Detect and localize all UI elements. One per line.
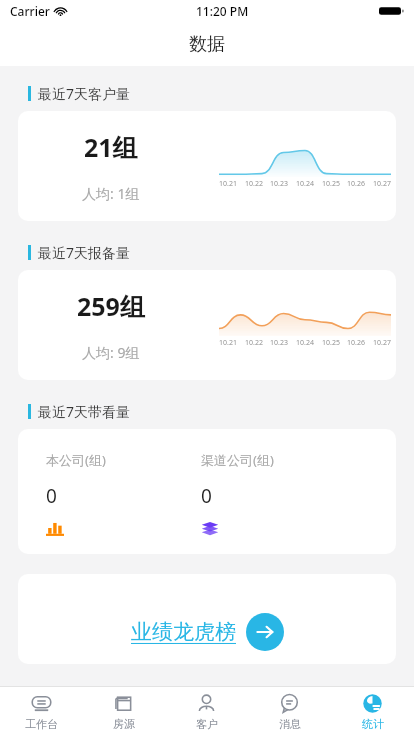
staticText: 房源 — [113, 717, 135, 731]
staticText: 10.26 — [347, 179, 365, 189]
staticText: 10.21 — [219, 179, 237, 189]
staticText: 渠道公司(组) — [201, 451, 274, 469]
staticText: 10.25 — [322, 179, 340, 189]
staticText: 10.23 — [270, 338, 288, 348]
staticText: 客户 — [196, 717, 218, 731]
staticText: 业绩龙虎榜 — [131, 619, 236, 645]
staticText: 最近7天带看量 — [38, 402, 131, 421]
staticText: 0 — [201, 483, 212, 509]
button[interactable]: 21组 — [18, 111, 396, 221]
button[interactable]: 本公司(组) — [18, 429, 396, 554]
staticText: 10.27 — [373, 338, 391, 348]
button[interactable]: 消息 — [248, 687, 331, 736]
staticText: 10.22 — [245, 338, 263, 348]
staticText: 人均: 9组 — [82, 343, 140, 362]
other: 业绩龙虎榜 — [246, 613, 284, 651]
button[interactable]: 259组 — [18, 270, 396, 380]
staticText: 工作台 — [25, 717, 58, 731]
staticText: 10.24 — [296, 338, 314, 348]
staticText: 0 — [46, 483, 57, 509]
button[interactable]: 业绩龙虎榜 — [18, 574, 396, 664]
staticText: 统计 — [362, 717, 384, 731]
staticText: 数据 — [189, 33, 225, 56]
button[interactable]: 统计 — [331, 687, 414, 736]
staticText: 人均: 1组 — [82, 184, 140, 203]
staticText: 10.21 — [219, 338, 237, 348]
staticText: 10.22 — [245, 179, 263, 189]
button[interactable]: 工作台 — [0, 687, 82, 736]
staticText: 10.24 — [296, 179, 314, 189]
staticText: Carrier — [10, 3, 50, 19]
staticText: 10.26 — [347, 338, 365, 348]
staticText: 最近7天客户量 — [38, 84, 131, 103]
staticText: 10.23 — [270, 179, 288, 189]
staticText: 10.27 — [373, 179, 391, 189]
staticText: 21组 — [84, 130, 138, 164]
staticText: 最近7天报备量 — [38, 243, 131, 262]
staticText: 10.25 — [322, 338, 340, 348]
staticText: 259组 — [77, 289, 145, 323]
button[interactable]: 客户 — [165, 687, 248, 736]
staticText: 本公司(组) — [46, 451, 106, 469]
staticText: 11:20 PM — [196, 3, 249, 19]
staticText: 消息 — [279, 717, 301, 731]
button[interactable]: 房源 — [82, 687, 165, 736]
